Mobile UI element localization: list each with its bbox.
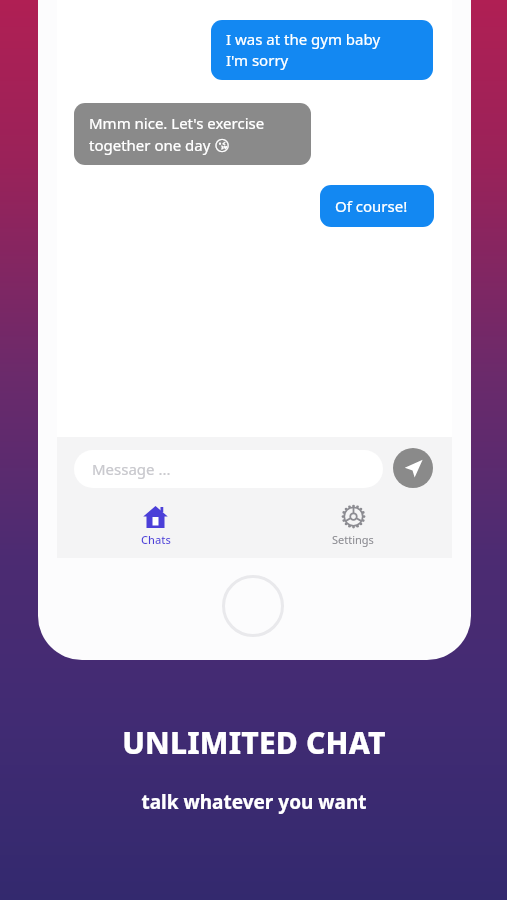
staticText: UNLIMITED CHAT xyxy=(122,722,386,763)
button[interactable]: Send xyxy=(393,448,433,488)
button[interactable]: Settings xyxy=(254,500,452,550)
button[interactable]: Chats xyxy=(57,500,254,550)
staticText: talk whatever you want xyxy=(141,789,367,815)
button[interactable]: I was at the gym baby I'm sorry xyxy=(211,20,433,80)
button[interactable]: Mmm nice. Let's exercise together one da… xyxy=(74,103,311,165)
staticText: Chats xyxy=(141,532,171,547)
button[interactable]: Message ... xyxy=(74,450,383,488)
button[interactable]: Of course! xyxy=(320,185,434,227)
staticText: Message ... xyxy=(92,459,171,479)
staticText: Mmm nice. Let's exercise together one da… xyxy=(89,113,265,155)
staticText: Settings xyxy=(332,532,374,547)
staticText: Of course! xyxy=(335,196,408,216)
staticText: I was at the gym baby I'm sorry xyxy=(226,29,381,71)
